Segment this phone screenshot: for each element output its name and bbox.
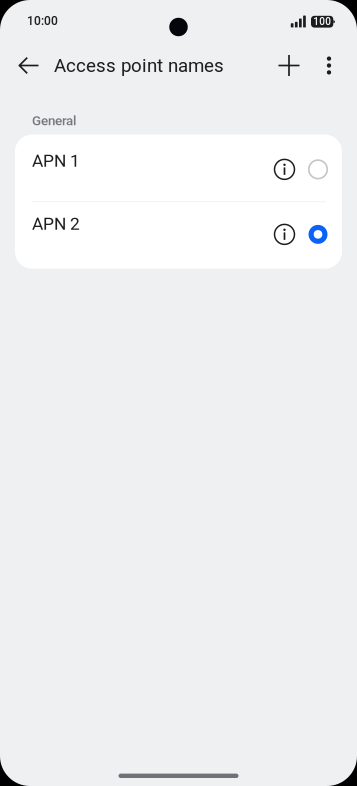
button[interactable]: Details for APN 1 <box>268 141 301 195</box>
button[interactable]: Back <box>9 43 47 88</box>
button[interactable]: Select APN 2 <box>301 208 335 262</box>
button[interactable]: Select APN 1 <box>301 141 335 195</box>
staticText: APN 1 <box>32 151 80 171</box>
button[interactable]: Details for APN 2 <box>268 208 301 262</box>
button[interactable]: APN 1 <box>15 135 342 201</box>
staticText: Access point names <box>54 55 224 76</box>
staticText: APN 2 <box>32 214 80 234</box>
staticText: 10:00 <box>27 14 58 28</box>
button[interactable]: Add APN <box>268 43 310 88</box>
staticText: General <box>32 113 76 129</box>
staticText: 100 <box>313 16 331 27</box>
button[interactable]: More options <box>310 43 348 88</box>
button[interactable]: APN 2 <box>15 202 342 269</box>
